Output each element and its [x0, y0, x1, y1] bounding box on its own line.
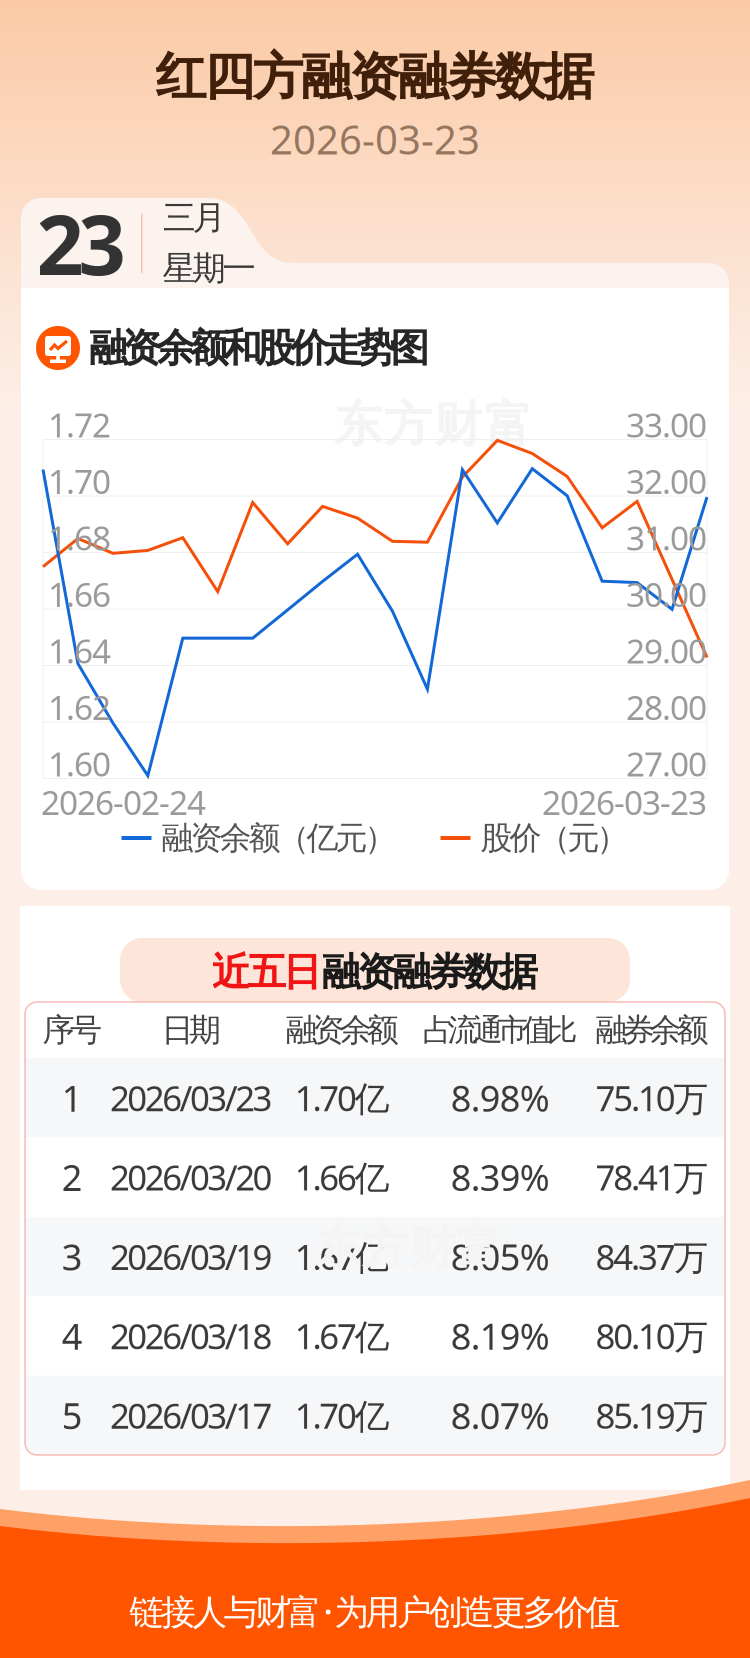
staticText: 30.00	[626, 572, 707, 616]
staticText: 股价（元）	[480, 818, 628, 858]
staticText: 1.60	[48, 741, 111, 786]
staticText: 8.05%	[451, 1233, 550, 1280]
staticText: 28.00	[626, 685, 707, 729]
staticText: 2026/03/17	[110, 1392, 272, 1438]
staticText: 4	[62, 1312, 83, 1360]
staticText: 5	[62, 1391, 83, 1439]
staticText: 8.98%	[451, 1074, 550, 1122]
staticText: 2026-03-23	[542, 780, 707, 824]
staticText: 78.41万	[595, 1154, 708, 1200]
staticText: 东方财富	[334, 395, 532, 454]
staticText: 85.19万	[595, 1392, 708, 1438]
staticText: 2026-03-23	[270, 112, 480, 165]
staticText: 占流通市值比	[423, 1011, 578, 1049]
staticText: 融资余额（亿元）	[161, 818, 396, 858]
staticText: 32.00	[626, 459, 707, 503]
staticText: 8.19%	[451, 1312, 550, 1360]
staticText: 1.67亿	[295, 1313, 390, 1359]
staticText: 1.64	[48, 628, 111, 673]
staticText: 2026/03/18	[110, 1313, 272, 1359]
staticText: 2	[62, 1153, 83, 1201]
staticText: 1.68	[48, 515, 111, 560]
staticText: 1.70亿	[295, 1392, 390, 1438]
staticText: 8.39%	[451, 1153, 550, 1201]
staticText: 2026/03/20	[110, 1154, 272, 1200]
staticText: 84.37万	[595, 1233, 708, 1279]
staticText: 1	[62, 1074, 83, 1122]
staticText: 融资余额和股价走势图	[89, 324, 429, 372]
staticText: 2026/03/23	[110, 1075, 272, 1121]
staticText: 2026/03/19	[110, 1233, 272, 1279]
staticText: 1.66	[48, 572, 111, 616]
staticText: 融资融券数据	[322, 948, 538, 996]
staticText: 1.70亿	[295, 1075, 390, 1121]
staticText: 东方财富	[315, 1220, 501, 1276]
staticText: 日期	[161, 1010, 221, 1050]
staticText: 三月	[162, 197, 225, 238]
staticText: 星期一	[162, 248, 255, 289]
staticText: 80.10万	[595, 1313, 708, 1359]
staticText: 融资余额	[286, 1010, 399, 1050]
staticText: 27.00	[626, 741, 707, 786]
staticText: 2026-02-24	[41, 780, 206, 824]
staticText: 序号	[42, 1010, 102, 1050]
staticText: 8.07%	[451, 1391, 550, 1439]
staticText: 1.70	[48, 459, 111, 503]
staticText: 1.67亿	[295, 1233, 390, 1279]
staticText: 1.62	[48, 685, 111, 729]
staticText: 31.00	[626, 515, 707, 560]
staticText: 33.00	[626, 402, 707, 447]
staticText: 23	[36, 188, 125, 298]
staticText: 29.00	[626, 628, 707, 673]
staticText: 融券余额	[595, 1010, 708, 1050]
staticText: 近五日	[212, 948, 322, 996]
staticText: 3	[62, 1233, 83, 1280]
staticText: 链接人与财富 · 为用户创造更多价值	[130, 1588, 620, 1634]
staticText: 1.72	[48, 402, 111, 447]
button[interactable]: 23	[21, 198, 729, 288]
staticText: 75.10万	[595, 1075, 708, 1121]
staticText: 红四方融资融券数据	[155, 46, 594, 108]
staticText: 1.66亿	[295, 1154, 390, 1200]
